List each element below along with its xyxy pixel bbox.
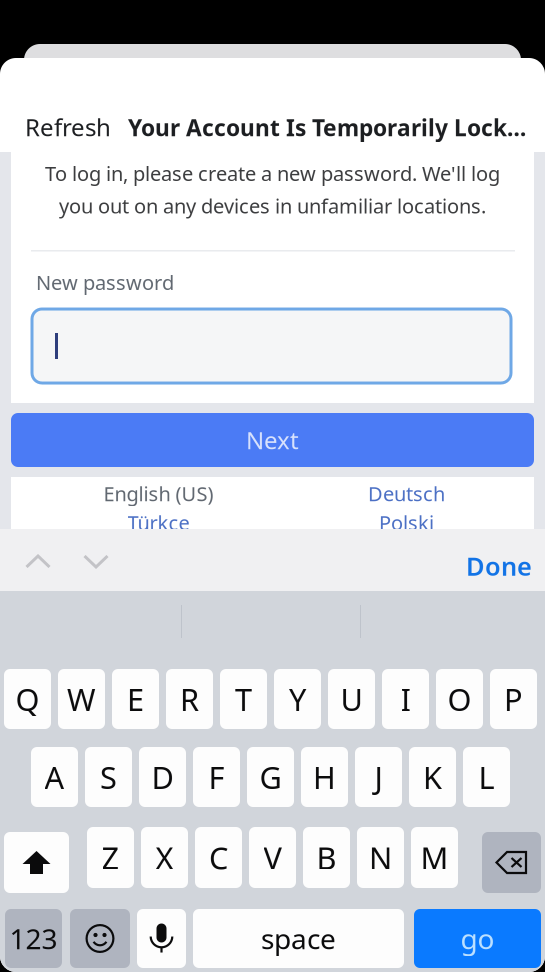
button[interactable]: Polski [270, 510, 543, 535]
staticText: R [180, 679, 199, 719]
button[interactable]: X [141, 827, 188, 888]
button[interactable]: V [249, 827, 296, 888]
button[interactable]: R [166, 669, 213, 729]
staticText: Your Account Is Temporarily Lock… [128, 112, 526, 143]
staticText: Deutsch [368, 480, 445, 507]
staticText: Z [101, 837, 119, 878]
button[interactable]: N [357, 827, 404, 888]
button[interactable]: go [414, 909, 541, 968]
staticText: J [374, 757, 382, 797]
staticText: E [127, 679, 144, 719]
staticText: To log in, please create a new password.… [45, 160, 500, 187]
staticText: A [44, 757, 64, 797]
button[interactable]: L [463, 747, 510, 807]
staticText: U [340, 679, 362, 719]
button[interactable]: Refresh [25, 111, 111, 143]
staticText: English (US) [103, 480, 213, 507]
button[interactable]: D [139, 747, 186, 807]
button[interactable]: Previous field [25, 554, 51, 569]
staticText: space [261, 920, 336, 957]
button[interactable]: U [328, 669, 375, 729]
staticText: Refresh [25, 111, 111, 143]
button[interactable]: Shift [4, 832, 69, 893]
button[interactable]: 123 [5, 909, 62, 968]
staticText: I [400, 679, 410, 719]
staticText: New password [36, 269, 174, 296]
staticText: O [447, 679, 471, 719]
button[interactable]: Z [87, 827, 134, 888]
staticText: N [369, 837, 392, 878]
button[interactable]: H [301, 747, 348, 807]
button[interactable]: Deutsch [270, 481, 543, 506]
button[interactable]: S [85, 747, 132, 807]
button[interactable]: Q [4, 669, 51, 729]
button[interactable]: E [112, 669, 159, 729]
staticText: Polski [379, 509, 434, 536]
button[interactable]: Dictation [137, 909, 186, 968]
staticText: K [423, 757, 442, 797]
button[interactable]: W [58, 669, 105, 729]
button[interactable]: Next [11, 413, 534, 467]
staticText: Türkçe [127, 509, 189, 536]
button[interactable]: M [411, 827, 458, 888]
staticText: C [209, 837, 228, 878]
staticText: Y [289, 679, 306, 719]
staticText: M [420, 837, 448, 878]
button[interactable]: I [382, 669, 429, 729]
button[interactable]: J [355, 747, 402, 807]
staticText: D [151, 757, 173, 797]
button[interactable]: K [409, 747, 456, 807]
staticText: Q [15, 679, 39, 719]
staticText: W [67, 679, 96, 719]
button[interactable]: G [247, 747, 294, 807]
staticText: L [478, 757, 494, 797]
staticText: B [316, 837, 336, 878]
button[interactable]: T [220, 669, 267, 729]
staticText: 123 [9, 920, 57, 957]
staticText: Next [246, 424, 299, 456]
staticText: T [235, 679, 252, 719]
button[interactable]: Delete [482, 832, 541, 893]
staticText: you out on any devices in unfamiliar loc… [59, 193, 486, 219]
button[interactable]: space [193, 909, 404, 968]
button[interactable]: P [490, 669, 537, 729]
button[interactable]: Emoji keyboard [70, 909, 130, 968]
staticText: H [313, 757, 336, 797]
button[interactable]: Done [466, 549, 532, 583]
button[interactable]: Türkçe [22, 510, 295, 535]
button[interactable]: C [195, 827, 242, 888]
button[interactable]: Y [274, 669, 321, 729]
staticText: G [259, 757, 281, 797]
button[interactable]: B [303, 827, 350, 888]
button[interactable]: F [193, 747, 240, 807]
staticText: Done [466, 549, 532, 583]
button[interactable]: Next field [83, 554, 109, 569]
staticText: F [208, 757, 224, 797]
button[interactable]: A [31, 747, 78, 807]
staticText: V [263, 837, 281, 878]
staticText: go [460, 920, 494, 957]
staticText: X [155, 837, 173, 878]
button[interactable]: O [436, 669, 483, 729]
staticText: P [504, 679, 523, 719]
button[interactable]: English (US) [22, 481, 295, 506]
staticText: S [100, 757, 117, 797]
